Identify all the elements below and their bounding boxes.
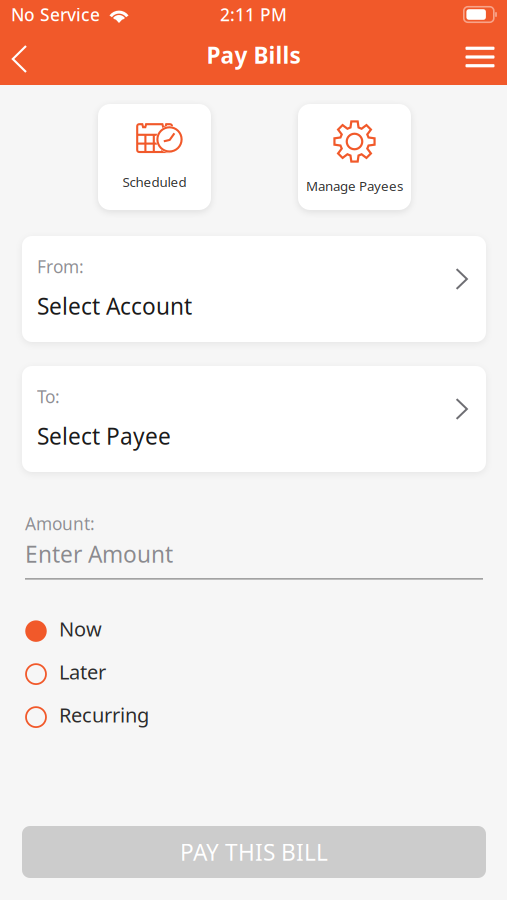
- staticText: Amount:: [25, 512, 95, 535]
- button[interactable]: Back: [1, 37, 38, 81]
- button[interactable]: From:: [22, 236, 486, 342]
- staticText: Now: [59, 615, 102, 642]
- button[interactable]: Menu: [458, 35, 502, 83]
- staticText: Manage Payees: [306, 177, 403, 195]
- button[interactable]: PAY THIS BILL: [22, 826, 486, 878]
- staticText: From:: [37, 255, 84, 278]
- button[interactable]: Manage Payees: [298, 104, 411, 210]
- button[interactable]: Recurring: [25, 696, 482, 739]
- staticText: Select Account: [37, 291, 192, 321]
- staticText: To:: [37, 385, 60, 408]
- button[interactable]: Now: [25, 610, 482, 653]
- staticText: Select Payee: [37, 421, 171, 451]
- staticText: No Service: [11, 3, 100, 26]
- staticText: Pay Bills: [206, 40, 300, 70]
- staticText: Recurring: [59, 701, 149, 728]
- button[interactable]: Scheduled: [98, 104, 211, 210]
- staticText: PAY THIS BILL: [180, 837, 328, 867]
- button[interactable]: To:: [22, 366, 486, 472]
- staticText: 2:11 PM: [220, 3, 287, 26]
- staticText: Later: [59, 658, 106, 685]
- staticText: Scheduled: [122, 173, 186, 191]
- button[interactable]: Later: [25, 653, 482, 696]
- staticText: Enter Amount: [25, 539, 173, 569]
